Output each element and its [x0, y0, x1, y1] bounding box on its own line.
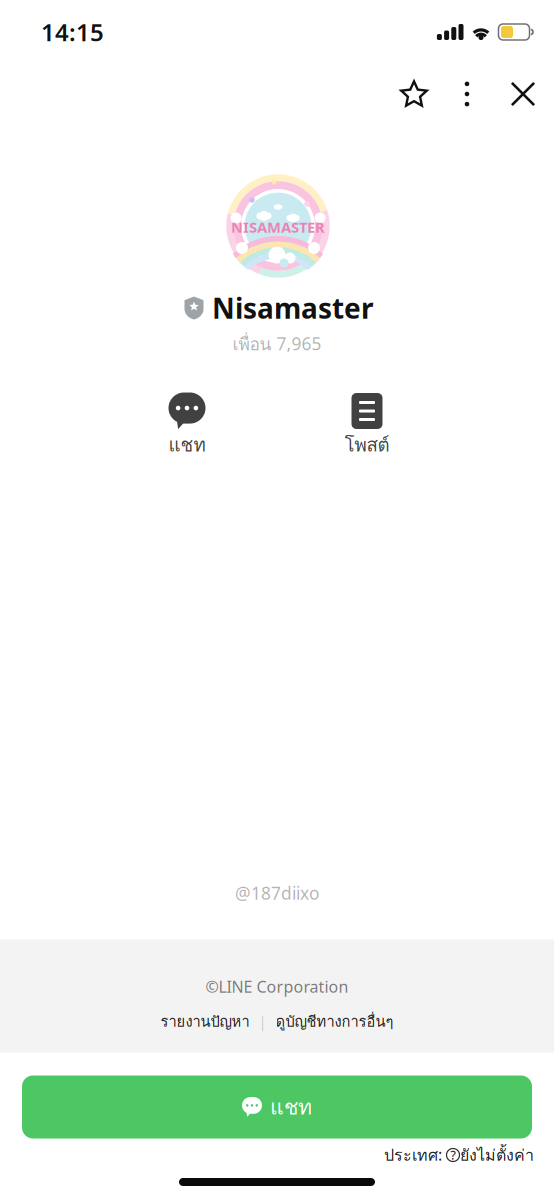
staticText: แชท	[168, 430, 205, 459]
button[interactable]: Close	[496, 66, 550, 122]
staticText: |	[258, 1012, 266, 1031]
staticText: เพื่อน 7,965	[232, 331, 321, 357]
staticText: @187diixo	[235, 881, 319, 904]
button[interactable]: แชท	[22, 1075, 532, 1138]
staticText: 14:15	[41, 16, 104, 48]
staticText: ©LINE Corporation	[205, 976, 348, 997]
staticText: แชท	[270, 1090, 312, 1124]
staticText: โพสต์	[344, 430, 389, 459]
button[interactable]: รายงานปัญหา	[160, 1010, 249, 1033]
button[interactable]: โพสต์	[315, 388, 419, 468]
staticText: NISAMASTER	[231, 217, 325, 237]
staticText: ดูบัญชีทางการอื่นๆ	[275, 1010, 393, 1033]
button[interactable]: ดูบัญชีทางการอื่นๆ	[275, 1010, 393, 1033]
staticText: รายงานปัญหา	[160, 1010, 249, 1033]
button[interactable]: Add to favourites	[387, 66, 441, 122]
staticText: ประเทศ:	[384, 1143, 446, 1167]
staticText: ยังไม่ตั้งค่า	[460, 1143, 534, 1167]
button[interactable]: More options	[440, 66, 494, 122]
button[interactable]: แชท	[135, 388, 239, 468]
staticText: Nisamaster	[212, 289, 374, 327]
staticText: ?	[450, 1147, 455, 1163]
